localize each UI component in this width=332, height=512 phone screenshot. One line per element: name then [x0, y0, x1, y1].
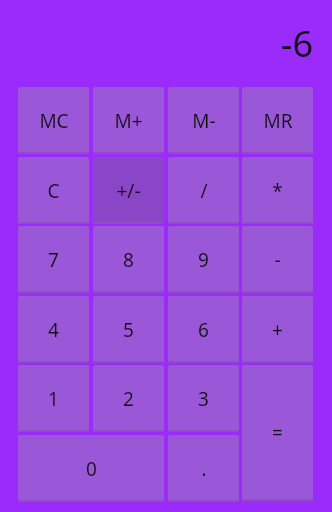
staticText: 0 [86, 456, 97, 482]
staticText: M+ [114, 108, 143, 134]
button[interactable]: 8 [93, 226, 164, 293]
button[interactable]: M+ [93, 87, 164, 154]
button[interactable]: 9 [168, 226, 239, 293]
staticText: 4 [48, 317, 59, 343]
button[interactable]: = [242, 365, 313, 501]
button[interactable]: 6 [168, 296, 239, 363]
button[interactable]: M- [168, 87, 239, 154]
button[interactable]: +/- [93, 157, 164, 224]
button[interactable]: 5 [93, 296, 164, 363]
button[interactable]: / [168, 157, 239, 224]
button[interactable]: + [242, 296, 313, 363]
staticText: * [272, 178, 283, 204]
button[interactable]: 1 [18, 365, 89, 432]
staticText: 9 [198, 247, 209, 273]
staticText: C [47, 178, 60, 204]
staticText: + [272, 317, 283, 343]
staticText: 5 [123, 317, 134, 343]
button[interactable]: - [242, 226, 313, 293]
staticText: 6 [198, 317, 209, 343]
staticText: +/- [116, 178, 141, 204]
staticText: 3 [198, 386, 209, 412]
button[interactable]: 0 [18, 435, 164, 502]
staticText: MR [263, 108, 293, 134]
staticText: -6 [280, 19, 313, 68]
staticText: 7 [48, 247, 59, 273]
staticText: M- [192, 108, 216, 134]
staticText: . [201, 456, 207, 482]
staticText: 2 [123, 386, 134, 412]
staticText: / [200, 178, 208, 204]
staticText: 1 [48, 386, 59, 412]
staticText: MC [39, 108, 69, 134]
button[interactable]: C [18, 157, 89, 224]
button[interactable]: 2 [93, 365, 164, 432]
staticText: - [274, 247, 281, 273]
button[interactable]: 3 [168, 365, 239, 432]
button[interactable]: MR [242, 87, 313, 154]
staticText: = [272, 420, 283, 446]
button[interactable]: 7 [18, 226, 89, 293]
button[interactable]: 4 [18, 296, 89, 363]
button[interactable]: * [242, 157, 313, 224]
staticText: 8 [123, 247, 134, 273]
button[interactable]: MC [18, 87, 89, 154]
button[interactable]: . [168, 435, 239, 502]
